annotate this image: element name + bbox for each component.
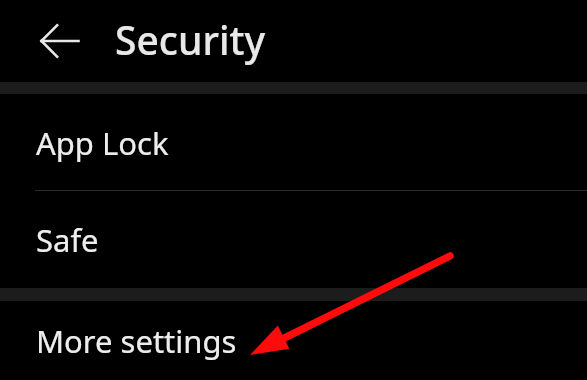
staticText: Security xyxy=(115,13,265,66)
button[interactable]: App Lock xyxy=(0,94,587,191)
staticText: More settings xyxy=(36,320,237,362)
button[interactable]: More settings xyxy=(0,301,587,380)
staticText: Safe xyxy=(36,219,99,261)
button[interactable]: Back xyxy=(36,17,84,65)
staticText: App Lock xyxy=(36,122,169,164)
button[interactable]: Safe xyxy=(0,191,587,288)
